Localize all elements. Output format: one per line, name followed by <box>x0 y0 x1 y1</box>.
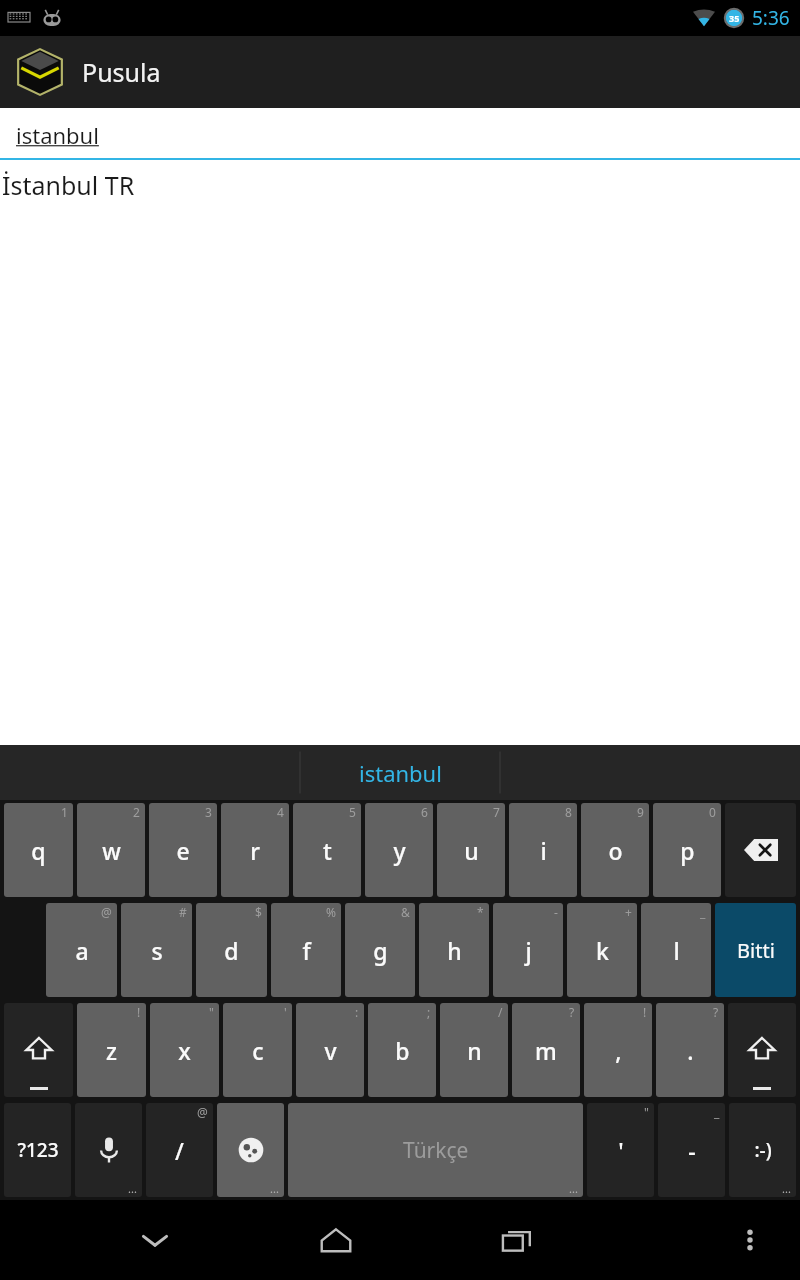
staticText: m <box>535 1035 557 1066</box>
staticText: 6 <box>421 804 428 820</box>
staticText: ? <box>713 1004 719 1020</box>
staticText: g <box>373 935 388 966</box>
button[interactable]: Shift <box>4 1003 73 1097</box>
staticText: a <box>75 935 89 966</box>
button[interactable]: ? <box>512 1003 580 1097</box>
button[interactable]: 6 <box>365 803 433 897</box>
staticText: ! <box>643 1004 647 1020</box>
staticText: _ <box>700 904 706 920</box>
staticText: 8 <box>565 804 572 820</box>
button[interactable]: 3 <box>149 803 217 897</box>
staticText: k <box>596 935 609 966</box>
staticText: ... <box>128 1181 137 1196</box>
button[interactable]: Recent apps <box>458 1200 575 1280</box>
staticText: d <box>224 935 239 966</box>
staticText: 4 <box>277 804 284 820</box>
button[interactable]: 4 <box>221 803 289 897</box>
button[interactable]: 2 <box>77 803 145 897</box>
staticText: e <box>176 835 190 866</box>
button[interactable]: $ <box>196 903 267 997</box>
staticText: 35 <box>729 12 740 24</box>
staticText: 1 <box>61 804 68 820</box>
button[interactable]: 7 <box>437 803 505 897</box>
button[interactable]: Change language <box>217 1103 284 1197</box>
staticText: y <box>393 835 406 866</box>
button[interactable]: istanbul <box>300 745 500 800</box>
staticText: l <box>673 935 680 966</box>
staticText: / <box>175 1135 184 1166</box>
staticText: 5 <box>349 804 356 820</box>
button[interactable]: 1 <box>4 803 73 897</box>
staticText: ' <box>284 1004 287 1020</box>
staticText: f <box>302 935 311 966</box>
staticText: q <box>31 835 46 866</box>
staticText: h <box>447 935 462 966</box>
button[interactable]: ! <box>77 1003 146 1097</box>
staticText: u <box>464 835 479 866</box>
staticText: Pusula <box>82 55 161 89</box>
staticText: ... <box>569 1181 578 1196</box>
staticText: ' <box>618 1135 624 1166</box>
staticText: w <box>102 835 121 866</box>
staticText: _ <box>714 1104 720 1120</box>
staticText: z <box>106 1035 117 1066</box>
staticText: ! <box>137 1004 141 1020</box>
button[interactable]: _ <box>641 903 711 997</box>
button[interactable]: / <box>440 1003 508 1097</box>
staticText: % <box>326 904 336 920</box>
button[interactable]: 5 <box>293 803 361 897</box>
button[interactable]: _ <box>658 1103 725 1197</box>
button[interactable]: Shift <box>728 1003 796 1097</box>
button[interactable]: ' <box>223 1003 292 1097</box>
button[interactable]: 0 <box>653 803 721 897</box>
staticText: o <box>608 835 623 866</box>
button[interactable]: More options <box>713 1200 787 1280</box>
button[interactable]: ? <box>656 1003 724 1097</box>
button[interactable]: :-) <box>729 1103 796 1197</box>
button[interactable]: @ <box>46 903 117 997</box>
button[interactable]: @ <box>146 1103 213 1197</box>
button[interactable]: * <box>419 903 489 997</box>
button[interactable]: Bitti <box>715 903 796 997</box>
staticText: . <box>687 1035 694 1066</box>
button[interactable]: ?123 <box>4 1103 71 1197</box>
staticText: v <box>324 1035 337 1066</box>
button[interactable]: + <box>567 903 637 997</box>
button[interactable]: ; <box>368 1003 436 1097</box>
staticText: istanbul <box>16 120 99 150</box>
button[interactable]: Hide keyboard <box>96 1200 213 1280</box>
button[interactable]: - <box>493 903 563 997</box>
button[interactable]: 9 <box>581 803 649 897</box>
button[interactable]: Voice input <box>75 1103 142 1197</box>
button[interactable]: & <box>345 903 415 997</box>
staticText: ? <box>569 1004 575 1020</box>
staticText: p <box>680 835 695 866</box>
staticText: istanbul <box>359 758 442 788</box>
staticText: @ <box>197 1104 208 1120</box>
staticText: # <box>179 904 187 920</box>
staticText: b <box>395 1035 410 1066</box>
button[interactable]: İstanbul TR <box>0 166 800 208</box>
button[interactable]: " <box>150 1003 219 1097</box>
staticText: ... <box>782 1181 791 1196</box>
button[interactable]: 8 <box>509 803 577 897</box>
staticText: : <box>355 1004 359 1020</box>
button[interactable]: Home <box>277 1200 394 1280</box>
staticText: s <box>151 935 163 966</box>
button[interactable]: Space <box>288 1103 583 1197</box>
staticText: ?123 <box>17 1137 59 1163</box>
button[interactable]: ! <box>584 1003 652 1097</box>
staticText: @ <box>101 904 112 920</box>
button[interactable]: Backspace <box>725 803 796 897</box>
button[interactable]: % <box>271 903 341 997</box>
staticText: 2 <box>133 804 140 820</box>
button[interactable]: istanbul <box>0 108 800 160</box>
staticText: * <box>477 904 484 920</box>
staticText: " <box>644 1104 649 1120</box>
button[interactable]: " <box>587 1103 654 1197</box>
staticText: ... <box>270 1181 279 1196</box>
button[interactable]: # <box>121 903 192 997</box>
staticText: j <box>525 935 532 966</box>
staticText: " <box>209 1004 214 1020</box>
button[interactable]: : <box>296 1003 364 1097</box>
